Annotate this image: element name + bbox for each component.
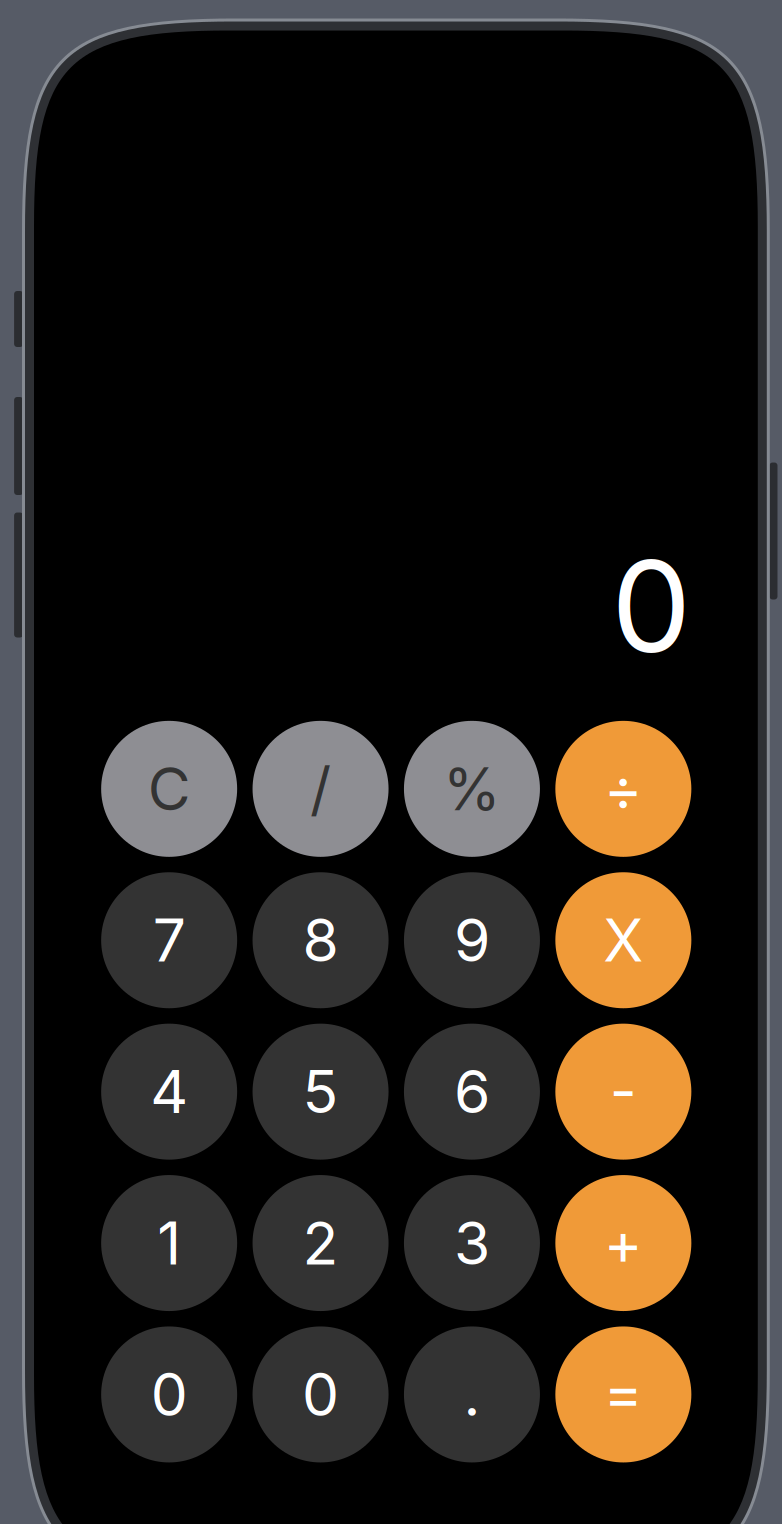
staticText: 0 <box>302 1359 339 1430</box>
staticText: 8 <box>302 905 338 976</box>
staticText: X <box>603 905 643 976</box>
staticText: . <box>463 1359 480 1430</box>
button[interactable]: 6 <box>404 1024 540 1160</box>
button[interactable]: % <box>404 721 540 857</box>
staticText: 5 <box>302 1056 338 1127</box>
staticText: + <box>604 1208 643 1279</box>
staticText: / <box>310 753 331 824</box>
staticText: 9 <box>454 905 490 976</box>
button[interactable]: . <box>404 1326 540 1462</box>
button[interactable]: ÷ <box>555 721 691 857</box>
staticText: - <box>610 1055 637 1126</box>
staticText: 1 <box>157 1208 181 1279</box>
staticText: 7 <box>153 905 186 976</box>
button[interactable]: = <box>555 1326 691 1462</box>
button[interactable]: - <box>555 1024 691 1160</box>
staticText: = <box>604 1357 643 1428</box>
button[interactable]: 9 <box>404 872 540 1008</box>
staticText: 2 <box>302 1208 338 1279</box>
button[interactable]: X <box>555 872 691 1008</box>
button[interactable]: 0 <box>252 1326 388 1462</box>
staticText: 6 <box>454 1056 490 1127</box>
button[interactable]: C <box>101 721 237 857</box>
button[interactable]: / <box>252 721 388 857</box>
button[interactable]: 7 <box>101 872 237 1008</box>
button[interactable]: 3 <box>404 1175 540 1311</box>
staticText: C <box>148 753 191 824</box>
staticText: 3 <box>454 1208 490 1279</box>
button[interactable]: 4 <box>101 1024 237 1160</box>
button[interactable]: 1 <box>101 1175 237 1311</box>
staticText: 0 <box>611 529 691 683</box>
staticText: % <box>443 753 501 824</box>
button[interactable]: 5 <box>252 1024 388 1160</box>
staticText: ÷ <box>604 753 643 824</box>
button[interactable]: 8 <box>252 872 388 1008</box>
staticText: 4 <box>150 1056 188 1127</box>
button[interactable]: 2 <box>252 1175 388 1311</box>
button[interactable]: + <box>555 1175 691 1311</box>
staticText: 0 <box>151 1359 188 1430</box>
button[interactable]: 0 <box>101 1326 237 1462</box>
